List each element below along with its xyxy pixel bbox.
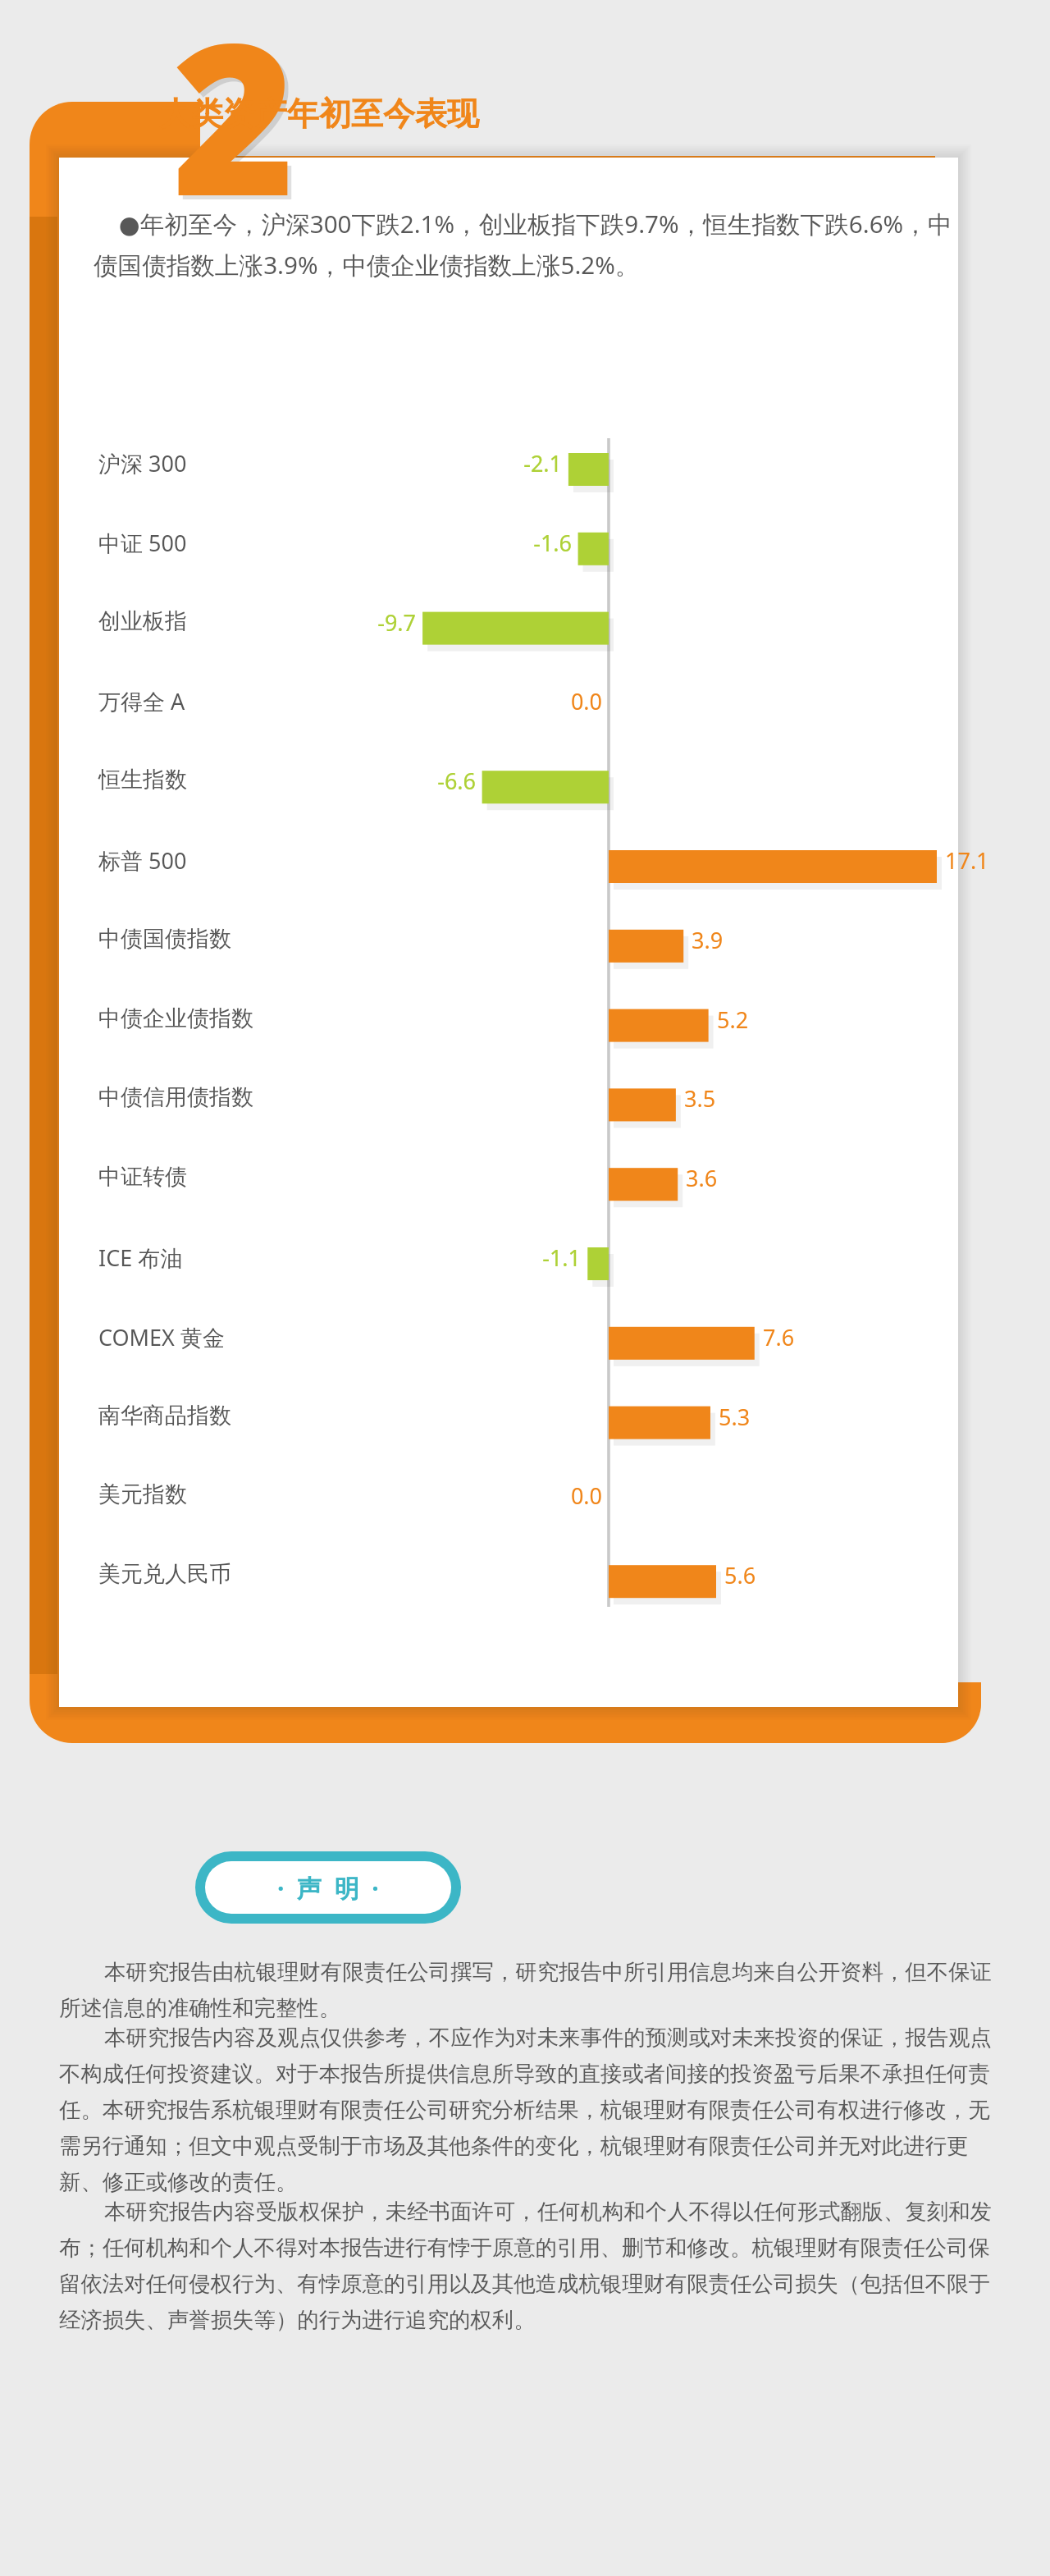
staticText: 沪深 300: [98, 448, 187, 478]
staticText: 中债信用债指数: [98, 1083, 253, 1111]
staticText: 万得全 A: [98, 686, 185, 716]
staticText: ICE 布油: [98, 1242, 183, 1273]
staticText: -1.6: [513, 528, 572, 558]
staticText: 17.1: [945, 845, 1004, 876]
button[interactable]: Section 2: [172, 0, 328, 258]
staticText: -6.6: [417, 766, 476, 796]
staticText: 本研究报告内容及观点仅供参考，不应作为对未来事件的预测或对未来投资的保证，报告观…: [59, 2022, 994, 2196]
staticText: 本研究报告内容受版权保护，未经书面许可，任何机构和个人不得以任何形式翻版、复刻和…: [59, 2196, 994, 2334]
button[interactable]: · 声 明 ·: [195, 1851, 461, 1924]
staticText: 大类资产年初至今表现: [159, 94, 479, 134]
staticText: 美元指数: [98, 1480, 187, 1508]
staticText: 创业板指: [98, 607, 187, 635]
staticText: 5.3: [719, 1402, 778, 1432]
staticText: 中债国债指数: [98, 925, 231, 953]
staticText: 中债企业债指数: [98, 1004, 253, 1032]
staticText: -1.1: [522, 1242, 581, 1273]
staticText: COMEX 黄金: [98, 1322, 225, 1352]
staticText: 5.2: [717, 1004, 776, 1035]
staticText: 2: [172, 0, 296, 257]
staticText: 2: [176, 0, 300, 261]
staticText: 3.5: [684, 1083, 743, 1114]
staticText: 5.6: [724, 1560, 783, 1590]
staticText: 0.0: [543, 1480, 602, 1511]
staticText: 南华商品指数: [98, 1402, 231, 1430]
staticText: 本研究报告由杭银理财有限责任公司撰写，研究报告中所引用信息均来自公开资料，但不保…: [59, 1956, 994, 2022]
staticText: · 声 明 ·: [277, 1871, 379, 1905]
staticText: 3.9: [692, 925, 751, 955]
staticText: 3.6: [686, 1163, 745, 1193]
staticText: 恒生指数: [98, 766, 187, 794]
staticText: 0.0: [543, 686, 602, 716]
staticText: ●年初至今，沪深300下跌2.1%，创业板指下跌9.7%，恒生指数下跌6.6%，…: [94, 207, 953, 281]
staticText: -2.1: [503, 448, 562, 478]
staticText: -9.7: [357, 607, 416, 638]
staticText: 美元兑人民币: [98, 1560, 231, 1588]
staticText: 中证转债: [98, 1163, 187, 1191]
staticText: 7.6: [763, 1322, 822, 1352]
staticText: 中证 500: [98, 528, 187, 558]
staticText: 标普 500: [98, 845, 187, 876]
